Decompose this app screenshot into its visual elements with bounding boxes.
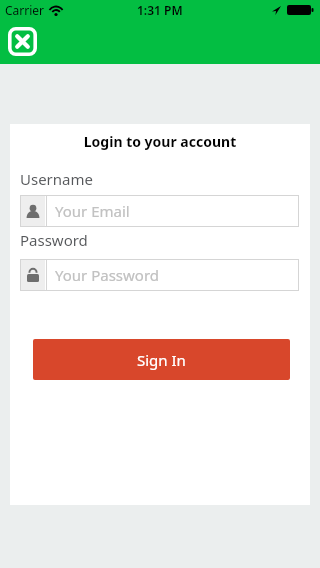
button[interactable]: Your Email: [20, 195, 299, 227]
staticText: Your Email: [55, 201, 130, 221]
staticText: Username: [20, 169, 93, 189]
staticText: Sign In: [137, 350, 186, 370]
staticText: Your Password: [55, 265, 160, 285]
button[interactable]: Sign In: [33, 339, 290, 380]
staticText: Password: [20, 230, 88, 250]
button[interactable]: [8, 27, 37, 56]
staticText: 1:31 PM: [137, 2, 183, 18]
button[interactable]: Your Password: [20, 259, 299, 291]
staticText: Carrier: [5, 2, 45, 18]
staticText: Login to your account: [10, 132, 310, 151]
